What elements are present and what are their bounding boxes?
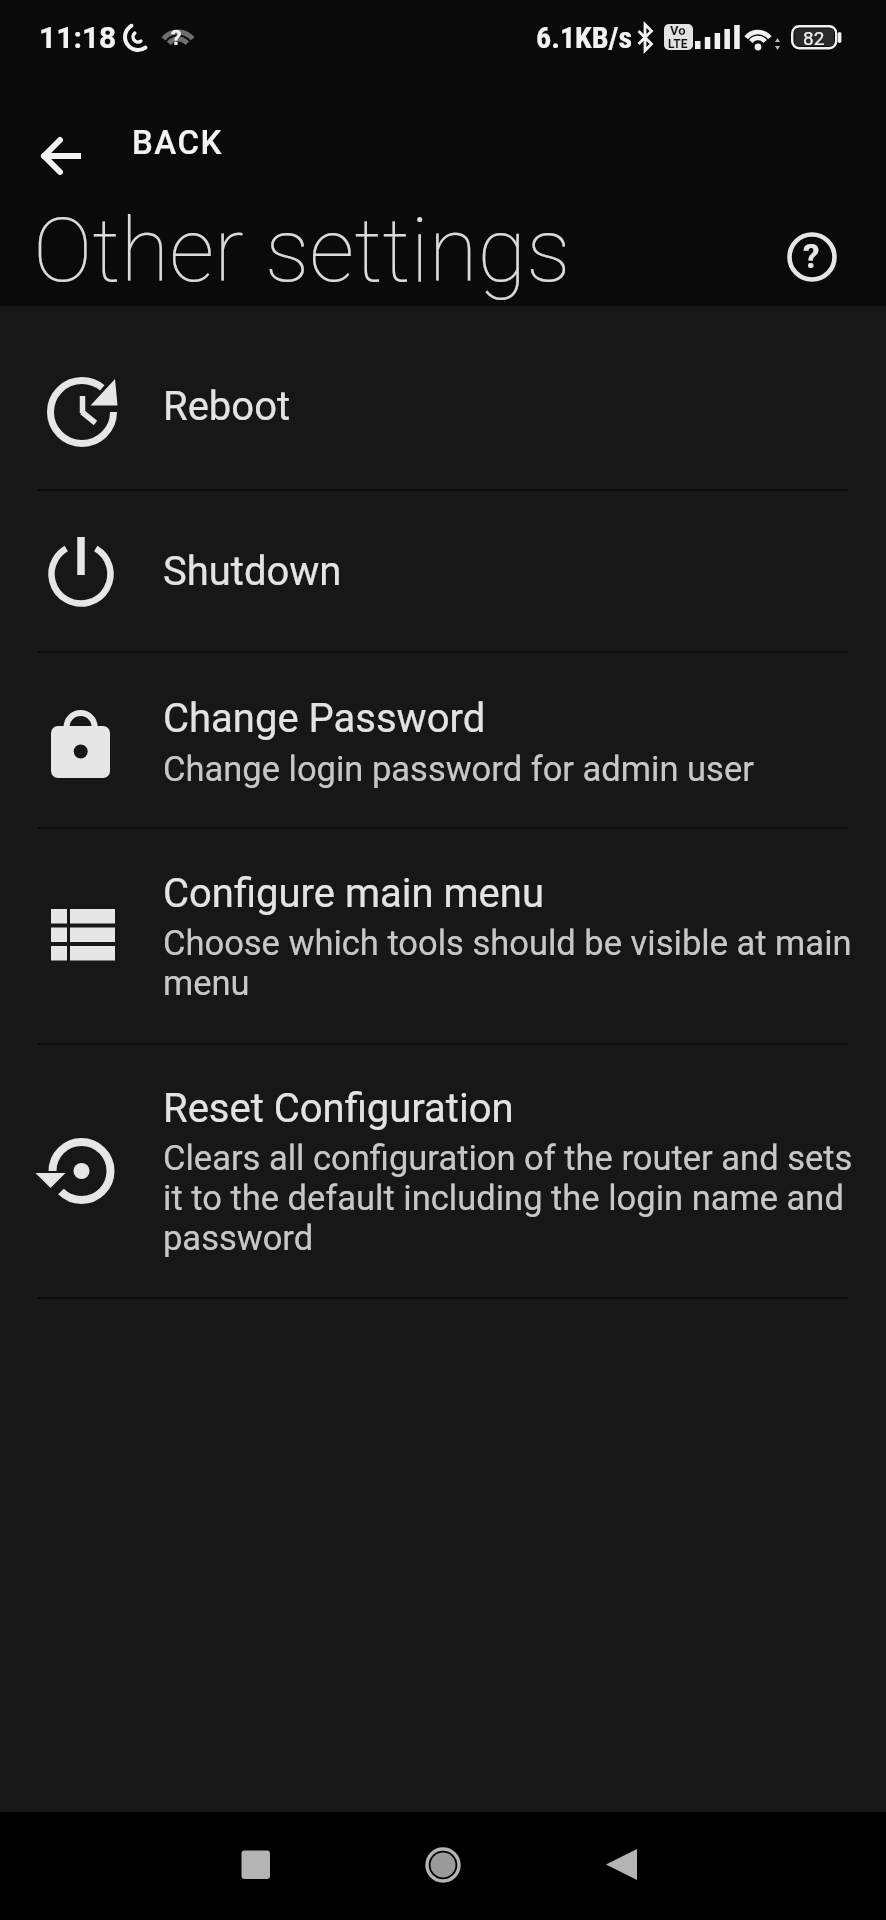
button[interactable]: Reboot	[0, 306, 886, 489]
button[interactable]	[415, 1837, 471, 1893]
staticText: ?	[803, 237, 820, 276]
button[interactable]: Reset Configuration	[0, 1044, 886, 1297]
staticText: Configure main menu	[163, 870, 544, 917]
staticText: Other settings	[33, 198, 571, 302]
staticText: LTE	[668, 37, 688, 51]
button[interactable]	[228, 1837, 284, 1893]
staticText: 6.1KB/s	[536, 20, 633, 55]
staticText: Reboot	[163, 383, 291, 430]
staticText: Change login password for admin user	[163, 749, 754, 789]
staticText: Reset Configuration	[163, 1085, 514, 1132]
staticText: 11:18	[39, 20, 117, 55]
button[interactable]: ?	[783, 228, 840, 285]
button[interactable]: BACK	[24, 106, 234, 178]
staticText: Vo	[670, 23, 686, 38]
staticText: ?	[171, 26, 182, 51]
staticText: BACK	[132, 123, 223, 162]
button[interactable]: Shutdown	[0, 491, 886, 651]
button[interactable]: Change Password	[0, 652, 886, 827]
button[interactable]: Configure main menu	[0, 828, 886, 1043]
staticText: Shutdown	[163, 548, 342, 595]
staticText: Choose which tools should be visible at …	[163, 923, 852, 1003]
button[interactable]	[594, 1837, 650, 1893]
staticText: 82	[803, 27, 825, 49]
staticText: Clears all configuration of the router a…	[163, 1138, 853, 1258]
staticText: Change Password	[163, 695, 486, 742]
